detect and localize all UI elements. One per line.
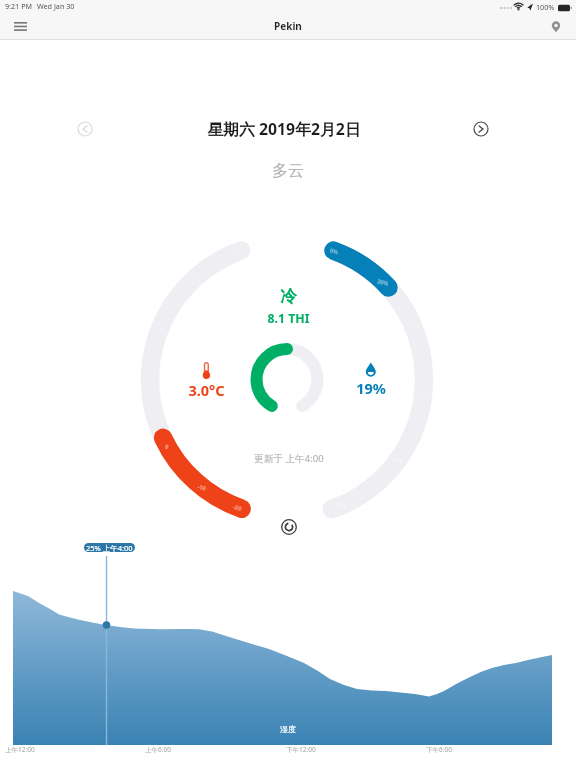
button[interactable]: 25% 上午4:00 bbox=[84, 543, 135, 552]
staticText: Wed Jan 30 bbox=[37, 1, 75, 11]
button[interactable]: Next day bbox=[464, 112, 498, 146]
button[interactable]: Location bbox=[536, 14, 576, 40]
staticText: 上午12:00 bbox=[5, 745, 35, 754]
staticText: 19% bbox=[356, 378, 386, 398]
staticText: 下午6:00 bbox=[426, 745, 452, 754]
staticText: 冷 bbox=[280, 286, 297, 307]
staticText: 多云 bbox=[272, 161, 304, 181]
staticText: 100% bbox=[536, 2, 555, 12]
staticText: 下午12:00 bbox=[286, 745, 316, 754]
staticText: 上午6:00 bbox=[145, 745, 171, 754]
staticText: 湿度 bbox=[280, 724, 296, 734]
staticText: 星期六 2019年2月2日 bbox=[207, 118, 361, 140]
button[interactable]: Menu bbox=[0, 14, 40, 40]
staticText: 8.1 THI bbox=[267, 310, 310, 327]
button[interactable]: 湿度 bbox=[268, 723, 308, 735]
button[interactable]: Temperature bbox=[196, 360, 218, 398]
staticText: 25% 上午4:00 bbox=[86, 543, 133, 552]
staticText: 9:21 PM bbox=[5, 1, 32, 11]
staticText: 3.0°C bbox=[188, 380, 225, 400]
button[interactable]: Refresh bbox=[278, 516, 300, 538]
button[interactable]: Previous day bbox=[68, 112, 102, 146]
staticText: 更新于 上午4:00 bbox=[254, 452, 324, 465]
staticText: Pekin bbox=[274, 19, 302, 33]
